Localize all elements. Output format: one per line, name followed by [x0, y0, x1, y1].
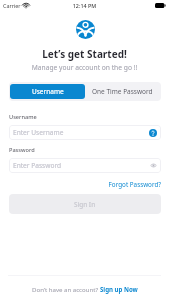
staticText: Password: [9, 146, 35, 154]
staticText: Manage your account on the go !!: [0, 63, 169, 72]
button[interactable]: Sign In: [9, 194, 161, 214]
button[interactable]: Sign up Now: [100, 285, 138, 293]
staticText: Carrier: [3, 2, 21, 9]
staticText: Username: [9, 113, 37, 121]
staticText: Enter Password: [13, 161, 150, 170]
staticText: Sign In: [74, 200, 96, 209]
button[interactable]: Enter Password: [13, 158, 157, 173]
button[interactable]: Enter Username: [13, 125, 157, 140]
button[interactable]: Username: [10, 84, 85, 99]
staticText: Forgot Password?: [9, 180, 161, 189]
button[interactable]: Help: [149, 129, 157, 137]
staticText: Don’t have an account?: [32, 285, 100, 293]
staticText: Enter Username: [13, 128, 149, 137]
staticText: 12:14 PM: [0, 2, 169, 9]
staticText: One Time Password: [92, 87, 153, 96]
button[interactable]: Show password: [150, 162, 157, 169]
button[interactable]: Forgot Password?: [9, 180, 161, 189]
button[interactable]: One Time Password: [85, 84, 160, 99]
staticText: Username: [32, 87, 64, 96]
staticText: Let’s get Started!: [0, 47, 169, 61]
